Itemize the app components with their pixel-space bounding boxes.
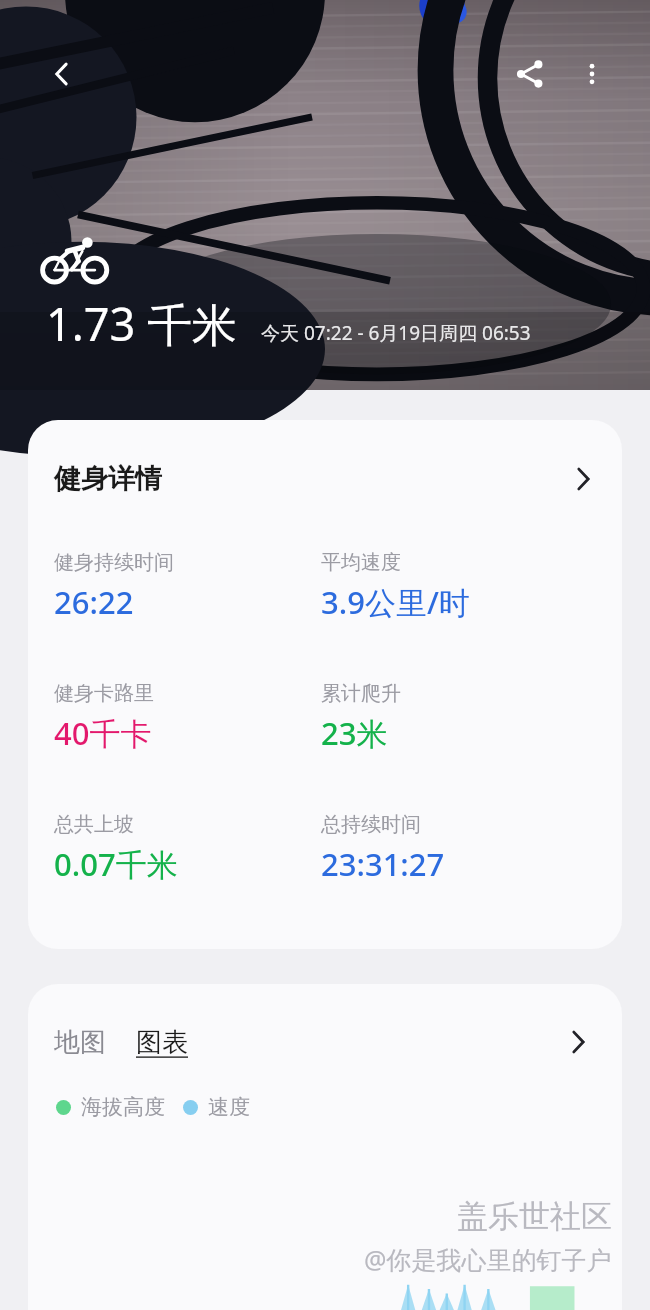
button[interactable]: 健身详情	[28, 420, 622, 522]
staticText: 盖乐世社区	[457, 1197, 612, 1236]
button[interactable]: More options	[564, 46, 620, 102]
staticText: 累计爬升	[321, 681, 401, 706]
button[interactable]: Share	[502, 46, 558, 102]
button[interactable]: 图表	[136, 1026, 188, 1059]
staticText: @你是我心里的钉子户	[364, 1242, 612, 1276]
staticText: 健身卡路里	[54, 681, 154, 706]
staticText: 0.07千米	[54, 843, 178, 885]
button[interactable]: Open chart	[560, 1024, 596, 1060]
staticText: 总持续时间	[321, 812, 421, 837]
staticText: 40千卡	[54, 712, 152, 754]
button[interactable]: 健身卡路里	[54, 681, 321, 754]
staticText: 23:31:27	[321, 843, 445, 885]
staticText: 地图	[54, 1026, 106, 1059]
staticText: 图表	[136, 1026, 188, 1059]
staticText: 速度	[208, 1094, 250, 1120]
staticText: 健身持续时间	[54, 550, 174, 575]
button[interactable]: 总共上坡	[54, 812, 321, 885]
staticText: 今天 07:22 - 6月19日周四 06:53	[261, 320, 531, 346]
button[interactable]: Back	[34, 46, 90, 102]
button[interactable]: 总持续时间	[321, 812, 602, 885]
button[interactable]: 累计爬升	[321, 681, 602, 754]
staticText: 海拔高度	[81, 1094, 165, 1120]
staticText: 1.73 千米	[46, 293, 237, 354]
staticText: 26:22	[54, 581, 134, 623]
staticText: 3.9公里/时	[321, 581, 470, 623]
button[interactable]: 地图	[54, 1026, 106, 1059]
button[interactable]: 平均速度	[321, 550, 602, 623]
staticText: 健身详情	[54, 462, 162, 496]
staticText: 总共上坡	[54, 812, 134, 837]
staticText: 平均速度	[321, 550, 401, 575]
staticText: 23米	[321, 712, 388, 754]
button[interactable]: 健身持续时间	[54, 550, 321, 623]
